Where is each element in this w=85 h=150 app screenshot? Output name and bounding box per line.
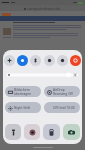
staticText: Night Shift [14,106,30,110]
button[interactable]: Flashlight [5,124,21,140]
button[interactable]: Night light [57,55,68,66]
button[interactable]: Brightness [5,70,80,78]
button[interactable]: Camera [63,124,80,140]
button[interactable]: AirDrop Receiving Off [44,86,80,97]
button[interactable]: Do not disturb [44,55,55,66]
staticText: Off Until 10:00 [53,106,75,110]
button[interactable]: Add tile [4,55,15,66]
button[interactable]: Screen record [24,124,40,140]
button[interactable]: Alarm [70,55,81,66]
staticText: computerbase.de [27,6,61,11]
button[interactable]: Bluetooth [30,55,41,66]
button[interactable]: Night Shift [5,102,41,113]
button[interactable]: Off Until 10:00 [44,102,80,113]
staticText: Bildschirm übertragen [14,88,31,96]
button[interactable]: Internet [17,55,28,66]
staticText: AirDrop Receiving Off [53,88,73,96]
button[interactable]: Bildschirm übertragen [5,86,41,97]
button[interactable]: Calculator [43,124,60,140]
